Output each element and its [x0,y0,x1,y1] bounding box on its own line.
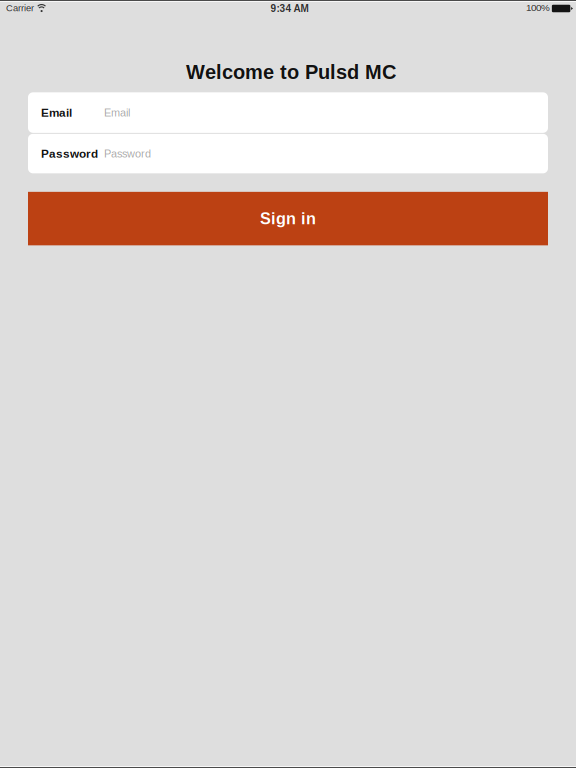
staticText: Email [104,106,130,119]
button[interactable]: Sign in [28,192,548,245]
button[interactable]: Email [28,92,548,133]
staticText: Carrier [6,3,34,13]
staticText: 100% [526,2,550,13]
button[interactable]: Password [28,134,548,173]
staticText: Password [41,147,98,160]
staticText: Sign in [260,209,316,228]
staticText: 9:34 AM [270,3,308,14]
staticText: Welcome to Pulsd MC [186,61,396,83]
staticText: Password [104,147,151,160]
staticText: Email [41,106,72,119]
